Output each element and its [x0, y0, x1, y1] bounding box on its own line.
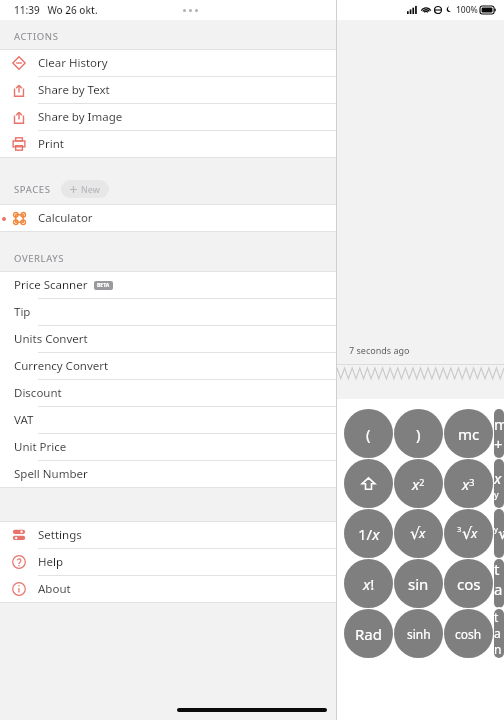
button[interactable]: x2 [394, 459, 443, 508]
staticText: cosh [455, 626, 482, 642]
staticText: VAT [14, 412, 34, 428]
staticText: Help [38, 554, 64, 570]
staticText: ACTIONS [14, 30, 59, 43]
button[interactable]: Tip [0, 299, 336, 325]
staticText: Discount [14, 385, 62, 401]
button[interactable]: About [0, 576, 336, 602]
button[interactable]: Calculator [0, 205, 336, 231]
button[interactable]: Settings [0, 522, 336, 548]
button[interactable]: tanh [494, 609, 504, 658]
button[interactable]: 3 [444, 509, 493, 558]
button[interactable]: Price Scanner [0, 272, 336, 298]
staticText: SPACES [14, 183, 51, 196]
button[interactable]: Share by Text [0, 77, 336, 103]
staticText: 3 [457, 524, 462, 534]
button[interactable]: Units Convert [0, 326, 336, 352]
staticText: Share by Text [38, 82, 110, 98]
staticText: Price Scanner [14, 277, 88, 293]
staticText: OVERLAYS [14, 252, 65, 265]
button[interactable]: ) [394, 409, 443, 458]
button[interactable]: m+ [494, 409, 504, 458]
button[interactable]: cosh [444, 609, 493, 658]
staticText: ( [366, 424, 371, 444]
staticText: x2 [412, 474, 425, 494]
staticText: 100% [456, 4, 478, 16]
button[interactable]: 1/x [344, 509, 393, 558]
button[interactable]: cos [444, 559, 493, 608]
button[interactable]: tan [494, 559, 504, 608]
staticText: Tip [14, 304, 31, 320]
button[interactable]: Clear History [0, 50, 336, 76]
staticText: √ [498, 524, 504, 543]
button[interactable]: Rad [344, 609, 393, 658]
button[interactable]: VAT [0, 407, 336, 433]
staticText: Clear History [38, 55, 108, 71]
staticText: cos [457, 574, 481, 594]
staticText: 7 seconds ago [349, 344, 410, 356]
button[interactable]: Share by Image [0, 104, 336, 130]
staticText: sin [408, 574, 429, 594]
staticText: tan [494, 559, 504, 608]
staticText: Units Convert [14, 331, 88, 347]
button[interactable]: mc [444, 409, 493, 458]
button[interactable]: Discount [0, 380, 336, 406]
staticText: Settings [38, 527, 82, 543]
button[interactable]: Print [0, 131, 336, 157]
staticText: x3 [462, 474, 475, 494]
button[interactable]: Unit Price [0, 434, 336, 460]
staticText: y [494, 524, 498, 534]
staticText: Spell Number [14, 466, 88, 482]
staticText: About [38, 581, 71, 597]
staticText: √ [410, 524, 421, 543]
staticText: Unit Price [14, 439, 67, 455]
staticText: x [471, 524, 478, 542]
staticText: Currency Convert [14, 358, 109, 374]
staticText: xy [494, 468, 504, 500]
button[interactable]: Currency Convert [0, 353, 336, 379]
button[interactable]: Shift [344, 459, 393, 508]
staticText: ) [416, 424, 421, 444]
staticText: x! [363, 574, 375, 594]
button[interactable]: x! [344, 559, 393, 608]
button[interactable]: Help [0, 549, 336, 575]
button[interactable]: sinh [394, 609, 443, 658]
staticText: Calculator [38, 210, 93, 226]
button[interactable]: y [494, 509, 504, 558]
staticText: √ [462, 524, 473, 543]
staticText: x [419, 524, 426, 542]
staticText: Rad [355, 624, 382, 644]
staticText: mc [458, 424, 480, 444]
button[interactable]: xy [494, 459, 504, 508]
staticText: New [81, 183, 100, 195]
button[interactable]: More options [175, 5, 206, 16]
staticText: BETA [97, 282, 110, 289]
staticText: Print [38, 136, 64, 152]
button[interactable]: sin [394, 559, 443, 608]
button[interactable]: x3 [444, 459, 493, 508]
button[interactable]: √ [394, 509, 443, 558]
staticText: 11:39 Wo 26 okt. [14, 3, 98, 17]
staticText: m+ [494, 414, 504, 454]
button[interactable]: ( [344, 409, 393, 458]
staticText: tanh [494, 609, 504, 658]
staticText: 1/x [358, 524, 380, 544]
button[interactable]: Spell Number [0, 461, 336, 487]
staticText: Share by Image [38, 109, 123, 125]
staticText: sinh [407, 626, 431, 642]
button[interactable]: New [61, 180, 109, 198]
